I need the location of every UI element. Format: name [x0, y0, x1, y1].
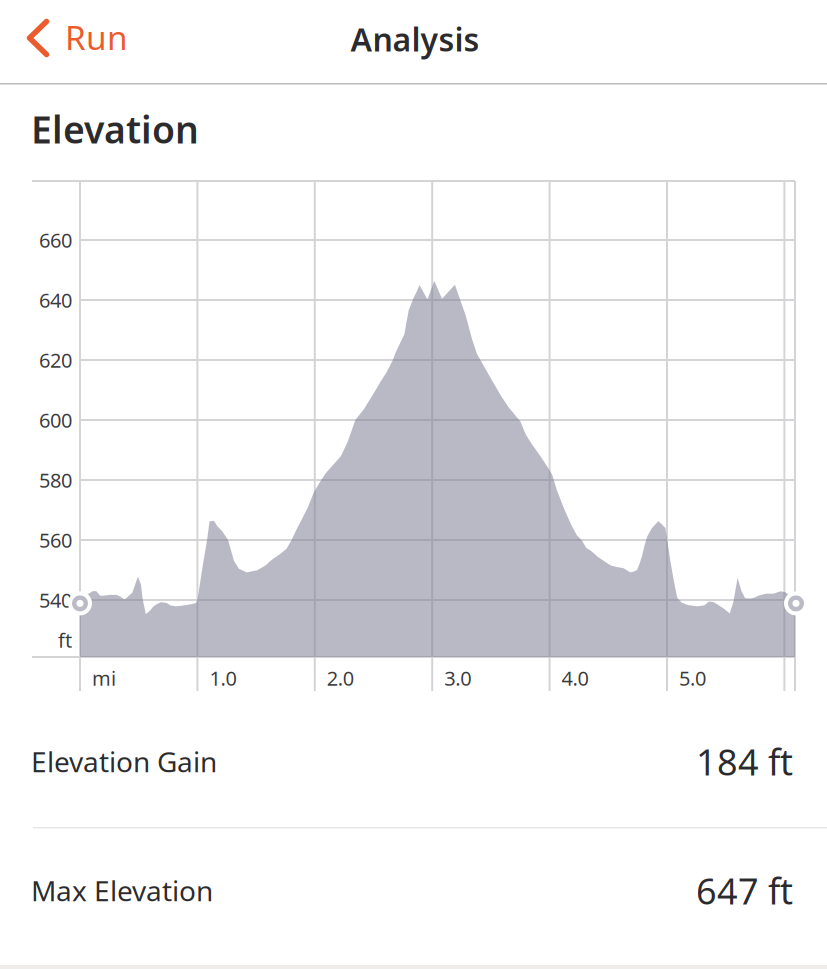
- staticText: 647 ft: [696, 867, 793, 914]
- staticText: 660: [39, 227, 72, 253]
- staticText: Run: [65, 15, 128, 59]
- staticText: Elevation Gain: [31, 743, 217, 780]
- staticText: ft: [58, 627, 72, 653]
- staticText: Analysis: [350, 18, 479, 60]
- staticText: 3.0: [444, 665, 471, 691]
- staticText: mi: [92, 665, 116, 691]
- staticText: 540: [39, 587, 72, 613]
- staticText: 560: [39, 527, 72, 553]
- staticText: 184 ft: [696, 738, 793, 785]
- staticText: Elevation: [31, 104, 199, 154]
- staticText: 4.0: [562, 665, 589, 691]
- staticText: 1.0: [209, 665, 236, 691]
- staticText: 640: [39, 287, 72, 313]
- staticText: 620: [39, 347, 72, 373]
- staticText: Max Elevation: [31, 872, 213, 909]
- staticText: 580: [39, 467, 72, 493]
- button[interactable]: Back to Run: [0, 6, 120, 70]
- staticText: 600: [39, 407, 72, 433]
- staticText: 5.0: [679, 665, 706, 691]
- staticText: 2.0: [327, 665, 354, 691]
